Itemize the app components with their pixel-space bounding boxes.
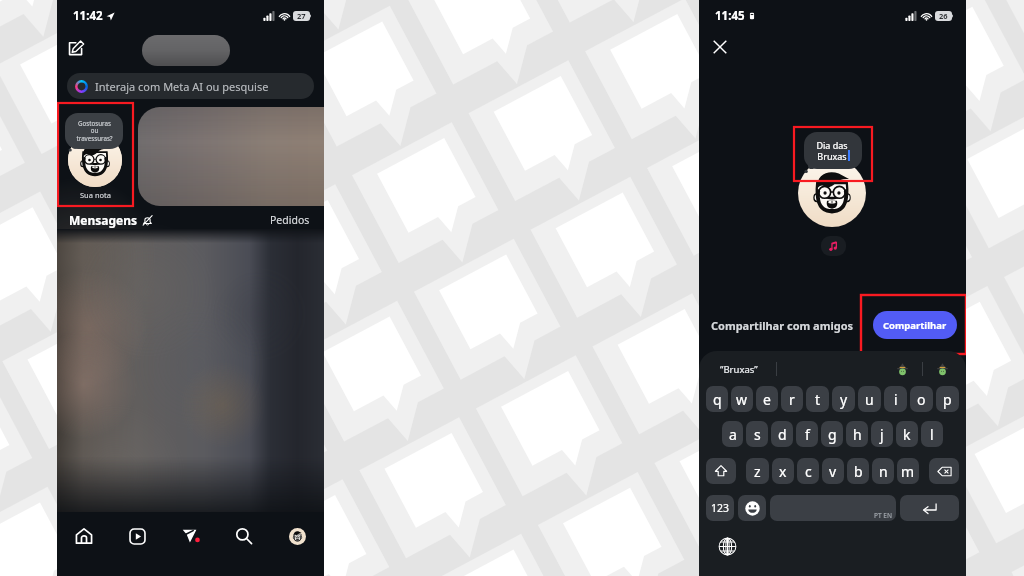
button[interactable]: x xyxy=(772,458,794,484)
button[interactable]: Interaja com Meta AI ou pesquise xyxy=(67,73,314,99)
button[interactable]: g xyxy=(821,421,843,447)
button[interactable]: Mensagens xyxy=(69,212,138,228)
staticText: Compartilhar xyxy=(883,319,947,332)
button[interactable]: Backspace xyxy=(929,458,959,484)
button[interactable]: y xyxy=(832,386,855,412)
button[interactable]: Notifications muted xyxy=(142,215,153,226)
staticText: x xyxy=(779,462,787,481)
button[interactable]: v xyxy=(822,458,844,484)
button[interactable]: Profile xyxy=(282,521,312,551)
button[interactable]: z xyxy=(746,458,769,484)
button[interactable]: Enter xyxy=(900,495,959,521)
staticText: m xyxy=(901,462,915,481)
staticText: 11:42 xyxy=(73,8,103,24)
button[interactable]: Compartilhar com amigos xyxy=(711,318,854,333)
button[interactable]: e xyxy=(756,386,778,412)
button[interactable]: m xyxy=(897,458,919,484)
button[interactable]: s xyxy=(746,421,768,447)
staticText: o xyxy=(917,390,926,409)
button[interactable]: o xyxy=(910,386,933,412)
button[interactable]: New message xyxy=(68,40,85,57)
staticText: Gostosuras ou travessuras? xyxy=(76,119,113,143)
button[interactable]: Search xyxy=(229,521,259,551)
button[interactable]: Change language xyxy=(718,537,737,556)
staticText: g xyxy=(828,425,837,444)
staticText: 123 xyxy=(711,501,730,515)
staticText: y xyxy=(840,390,848,409)
button[interactable]: r xyxy=(781,386,803,412)
button[interactable]: a xyxy=(722,421,743,447)
staticText: 27 xyxy=(297,11,306,21)
button[interactable]: Pedidos xyxy=(270,213,310,227)
button[interactable]: Gostosuras ou travessuras? xyxy=(65,113,123,149)
staticText: “Bruxas” xyxy=(720,363,758,376)
staticText: k xyxy=(903,425,911,444)
staticText: n xyxy=(879,462,888,481)
button[interactable]: i xyxy=(884,386,907,412)
staticText: r xyxy=(789,390,795,409)
button[interactable]: “Bruxas” xyxy=(720,363,758,376)
staticText: b xyxy=(854,462,863,481)
staticText: z xyxy=(754,462,761,481)
button[interactable]: Home xyxy=(69,521,99,551)
button[interactable]: d xyxy=(771,421,793,447)
button[interactable]: w xyxy=(731,386,753,412)
staticText: s xyxy=(754,425,761,444)
staticText: t xyxy=(815,390,821,409)
button[interactable]: Reels xyxy=(122,521,152,551)
button[interactable]: h xyxy=(846,421,868,447)
staticText: e xyxy=(763,390,771,409)
button[interactable]: p xyxy=(936,386,959,412)
staticText: PT EN xyxy=(874,511,892,520)
staticText: v xyxy=(829,462,837,481)
button[interactable]: Dia das Bruxas xyxy=(804,132,862,169)
staticText: f xyxy=(805,425,810,444)
staticText: Interaja com Meta AI ou pesquise xyxy=(95,79,269,94)
button[interactable]: Close xyxy=(711,38,729,56)
button[interactable]: n xyxy=(872,458,894,484)
button[interactable]: t xyxy=(806,386,829,412)
staticText: Compartilhar com amigos xyxy=(711,318,854,333)
staticText: d xyxy=(778,425,787,444)
staticText: Pedidos xyxy=(270,213,310,227)
button[interactable]: k xyxy=(896,421,918,447)
button[interactable]: c xyxy=(797,458,819,484)
staticText: h xyxy=(853,425,862,444)
button[interactable]: u xyxy=(858,386,881,412)
staticText: Sua nota xyxy=(80,190,111,200)
staticText: i xyxy=(894,390,898,409)
button[interactable] xyxy=(68,133,122,187)
staticText: u xyxy=(865,390,874,409)
button[interactable]: b xyxy=(847,458,869,484)
staticText: j xyxy=(880,425,884,444)
button[interactable]: Add music xyxy=(821,236,846,256)
button[interactable]: 123 xyxy=(706,495,734,521)
button[interactable] xyxy=(936,363,949,376)
staticText: 11:45 xyxy=(715,8,745,24)
staticText: a xyxy=(729,425,737,444)
button[interactable]: Compartilhar xyxy=(873,311,957,339)
button[interactable]: q xyxy=(706,386,728,412)
button[interactable]: j xyxy=(871,421,893,447)
button[interactable]: Messages xyxy=(176,521,206,551)
button[interactable] xyxy=(798,159,866,227)
staticText: Dia das Bruxas xyxy=(816,139,848,163)
staticText: l xyxy=(930,425,934,444)
button[interactable]: Space xyxy=(770,495,896,521)
button[interactable]: l xyxy=(921,421,943,447)
button[interactable]: Shift xyxy=(706,458,736,484)
staticText: Mensagens xyxy=(69,212,138,228)
button[interactable] xyxy=(896,363,909,376)
staticText: 26 xyxy=(939,11,948,21)
staticText: c xyxy=(805,462,812,481)
button[interactable]: f xyxy=(796,421,818,447)
staticText: q xyxy=(713,390,722,409)
button[interactable]: Emoji xyxy=(738,495,766,521)
staticText: w xyxy=(736,390,748,409)
staticText: p xyxy=(943,390,952,409)
